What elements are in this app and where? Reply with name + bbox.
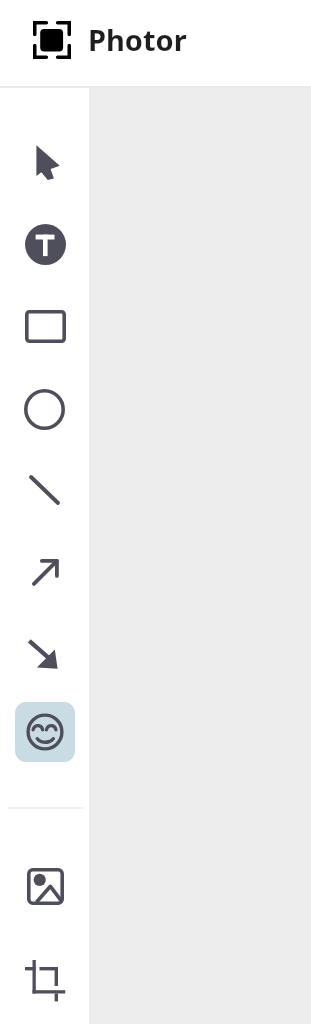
button[interactable]: Photor home	[33, 21, 71, 59]
button[interactable]: Select tool	[15, 133, 75, 193]
button[interactable]: Sticker tool	[15, 702, 75, 762]
button[interactable]: Insert image	[15, 856, 75, 916]
button[interactable]: Crop tool	[15, 950, 75, 1010]
button[interactable]: Ellipse tool	[15, 379, 75, 439]
staticText: Photor	[88, 20, 187, 59]
button[interactable]: Arrow tool	[15, 542, 75, 602]
button[interactable]: Rectangle tool	[15, 296, 75, 356]
button[interactable]: Filled arrow tool	[15, 624, 75, 684]
button[interactable]: Text tool	[15, 214, 75, 274]
button[interactable]: Line tool	[15, 460, 75, 520]
